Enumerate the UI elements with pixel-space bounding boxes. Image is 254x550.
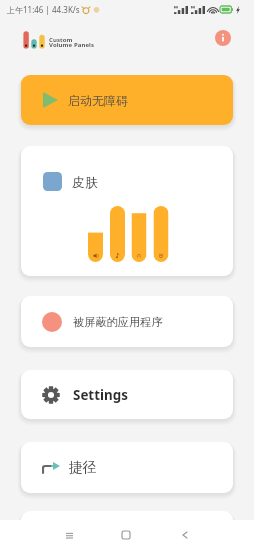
button[interactable]: 启动无障碍 (21, 75, 233, 125)
button[interactable]: 捷径 (21, 442, 233, 493)
staticText: Custom (49, 36, 73, 44)
staticText: Volume Panels (49, 41, 95, 49)
button[interactable]: Home (117, 520, 135, 550)
button[interactable]: 皮肤 (21, 146, 233, 276)
button[interactable]: Back (175, 520, 193, 550)
staticText: 上午11:46 | 44.3K/s (7, 4, 80, 15)
button[interactable]: 被屏蔽的应用程序 (21, 296, 233, 347)
button[interactable]: Info (215, 30, 231, 46)
button[interactable]: Recent apps (60, 520, 78, 550)
button[interactable]: Settings (21, 370, 233, 419)
staticText: 启动无障碍 (68, 93, 128, 108)
staticText: Settings (73, 386, 128, 404)
staticText: 皮肤 (72, 174, 98, 190)
staticText: 被屏蔽的应用程序 (73, 315, 163, 329)
staticText: 捷径 (69, 459, 97, 476)
